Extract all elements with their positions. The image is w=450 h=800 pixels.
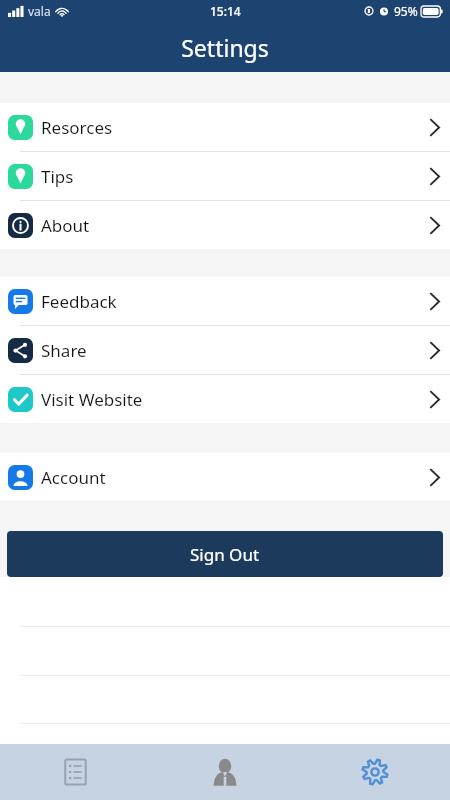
staticText: 95% xyxy=(394,3,418,19)
button[interactable]: Visit Website xyxy=(0,375,450,423)
button[interactable]: Resorces xyxy=(0,103,450,151)
button[interactable]: Settings xyxy=(300,744,450,800)
button[interactable]: Profile xyxy=(150,744,300,800)
staticText: Account xyxy=(41,466,106,489)
button[interactable]: Sign Out xyxy=(7,531,443,577)
button[interactable]: Feedback xyxy=(0,277,450,325)
staticText: Sign Out xyxy=(190,543,260,566)
staticText: Resorces xyxy=(41,116,113,139)
staticText: vala xyxy=(28,3,51,19)
staticText: Visit Website xyxy=(41,388,143,411)
staticText: About xyxy=(41,214,90,237)
button[interactable]: Account xyxy=(0,453,450,501)
button[interactable]: Share xyxy=(0,326,450,374)
staticText: 15:14 xyxy=(210,3,241,19)
staticText: Settings xyxy=(181,32,269,63)
staticText: Share xyxy=(41,339,87,362)
staticText: Tips xyxy=(41,165,74,188)
button[interactable]: Tips xyxy=(0,152,450,200)
button[interactable]: About xyxy=(0,201,450,249)
button[interactable]: List xyxy=(0,744,150,800)
staticText: Feedback xyxy=(41,290,117,313)
